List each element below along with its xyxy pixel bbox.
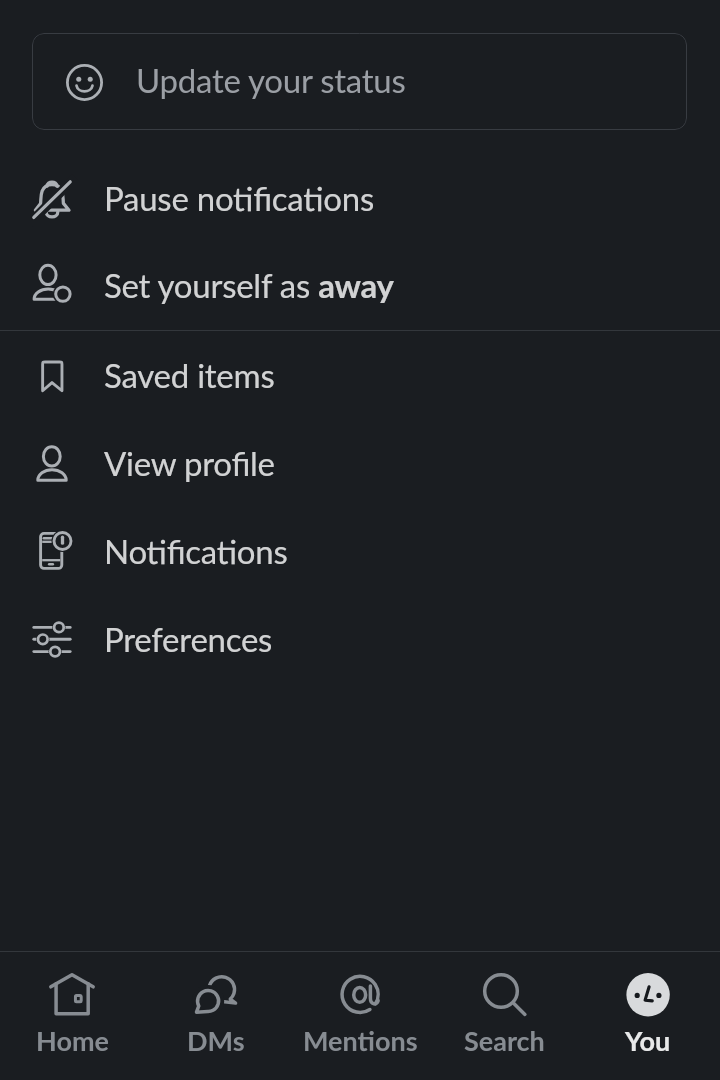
staticText: View profile [104, 443, 275, 483]
button[interactable]: Emoji [32, 33, 687, 130]
staticText: Mentions [303, 1024, 418, 1056]
button[interactable]: Set yourself as away [0, 241, 720, 329]
button[interactable]: Preferences [0, 595, 720, 683]
button[interactable]: Saved items [0, 331, 720, 419]
button[interactable]: Pause notifications [0, 154, 720, 242]
button[interactable]: You [576, 952, 720, 1080]
staticText: Update your status [136, 60, 406, 100]
staticText: You [625, 1024, 671, 1056]
staticText: Notifications [104, 531, 288, 571]
staticText: Preferences [104, 619, 273, 659]
staticText: Pause notifications [104, 178, 374, 218]
staticText: Set yourself as away [104, 265, 394, 305]
button[interactable]: View profile [0, 419, 720, 507]
staticText: Search [464, 1024, 545, 1056]
staticText: DMs [187, 1024, 245, 1056]
button[interactable]: Mentions [288, 952, 432, 1080]
staticText: Home [36, 1024, 109, 1056]
button[interactable]: Home [0, 952, 144, 1080]
button[interactable]: Search [432, 952, 576, 1080]
button[interactable]: DMs [144, 952, 288, 1080]
other: Emoji [66, 64, 103, 101]
button[interactable]: Notifications [0, 507, 720, 595]
staticText: Saved items [104, 355, 275, 395]
